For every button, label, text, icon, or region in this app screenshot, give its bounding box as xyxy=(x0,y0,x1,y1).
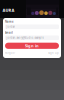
button[interactable]: Sign up xyxy=(48,51,59,55)
staticText: jordan.avery@studio.example xyxy=(6,36,44,39)
staticText: Name xyxy=(5,20,14,23)
staticText: AURA xyxy=(2,8,14,13)
button[interactable]: Sign in xyxy=(5,43,59,49)
staticText: Sign up xyxy=(48,51,59,55)
staticText: Forgot? xyxy=(5,51,15,55)
staticText: Sign in xyxy=(25,43,39,48)
button[interactable]: Forgot? xyxy=(5,51,15,55)
staticText: Email xyxy=(5,31,13,34)
staticText: Jordan xyxy=(6,25,15,28)
